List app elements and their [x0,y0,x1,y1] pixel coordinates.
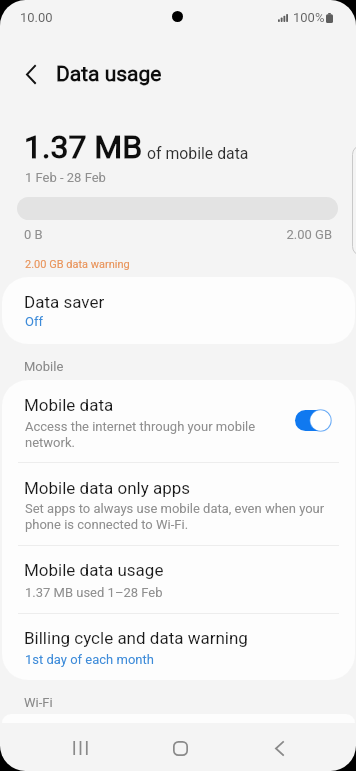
staticText: Billing cycle and data warning [24,628,248,648]
button[interactable]: Recent apps [52,725,108,771]
button[interactable]: Mobile data only apps [2,462,355,545]
button[interactable]: Home [152,725,208,771]
button[interactable]: Mobile data usage [2,545,355,612]
button[interactable]: Back [251,725,307,771]
button[interactable]: Mobile data on [295,410,331,431]
staticText: 1st day of each month [25,652,154,667]
staticText: of mobile data [147,144,249,163]
staticText: 2.00 GB [0,227,332,242]
staticText: Mobile data [24,395,114,415]
staticText: 10.00 [20,10,53,25]
staticText: 2.00 GB data warning [25,258,130,271]
staticText: 0 B [24,227,43,242]
staticText: 1.37 MB [24,128,143,166]
button[interactable]: Data saver [2,277,355,344]
staticText: Mobile data only apps [24,478,191,498]
staticText: 1.37 MB used 1–28 Feb [25,585,163,600]
staticText: Wi-Fi [24,695,53,710]
button[interactable]: Billing cycle and data warning [2,613,355,680]
staticText: 1 Feb - 28 Feb [25,170,106,185]
staticText: 100% [293,10,325,25]
staticText: Access the internet through your mobile … [25,419,265,450]
button[interactable]: Navigate up [11,54,51,94]
staticText: Data usage [56,62,162,87]
staticText: Data saver [24,292,105,312]
staticText: Mobile data usage [24,560,164,580]
staticText: Mobile [24,359,64,374]
button[interactable]: Mobile data [2,380,355,462]
staticText: Off [25,314,43,329]
staticText: Set apps to always use mobile data, even… [25,501,334,532]
